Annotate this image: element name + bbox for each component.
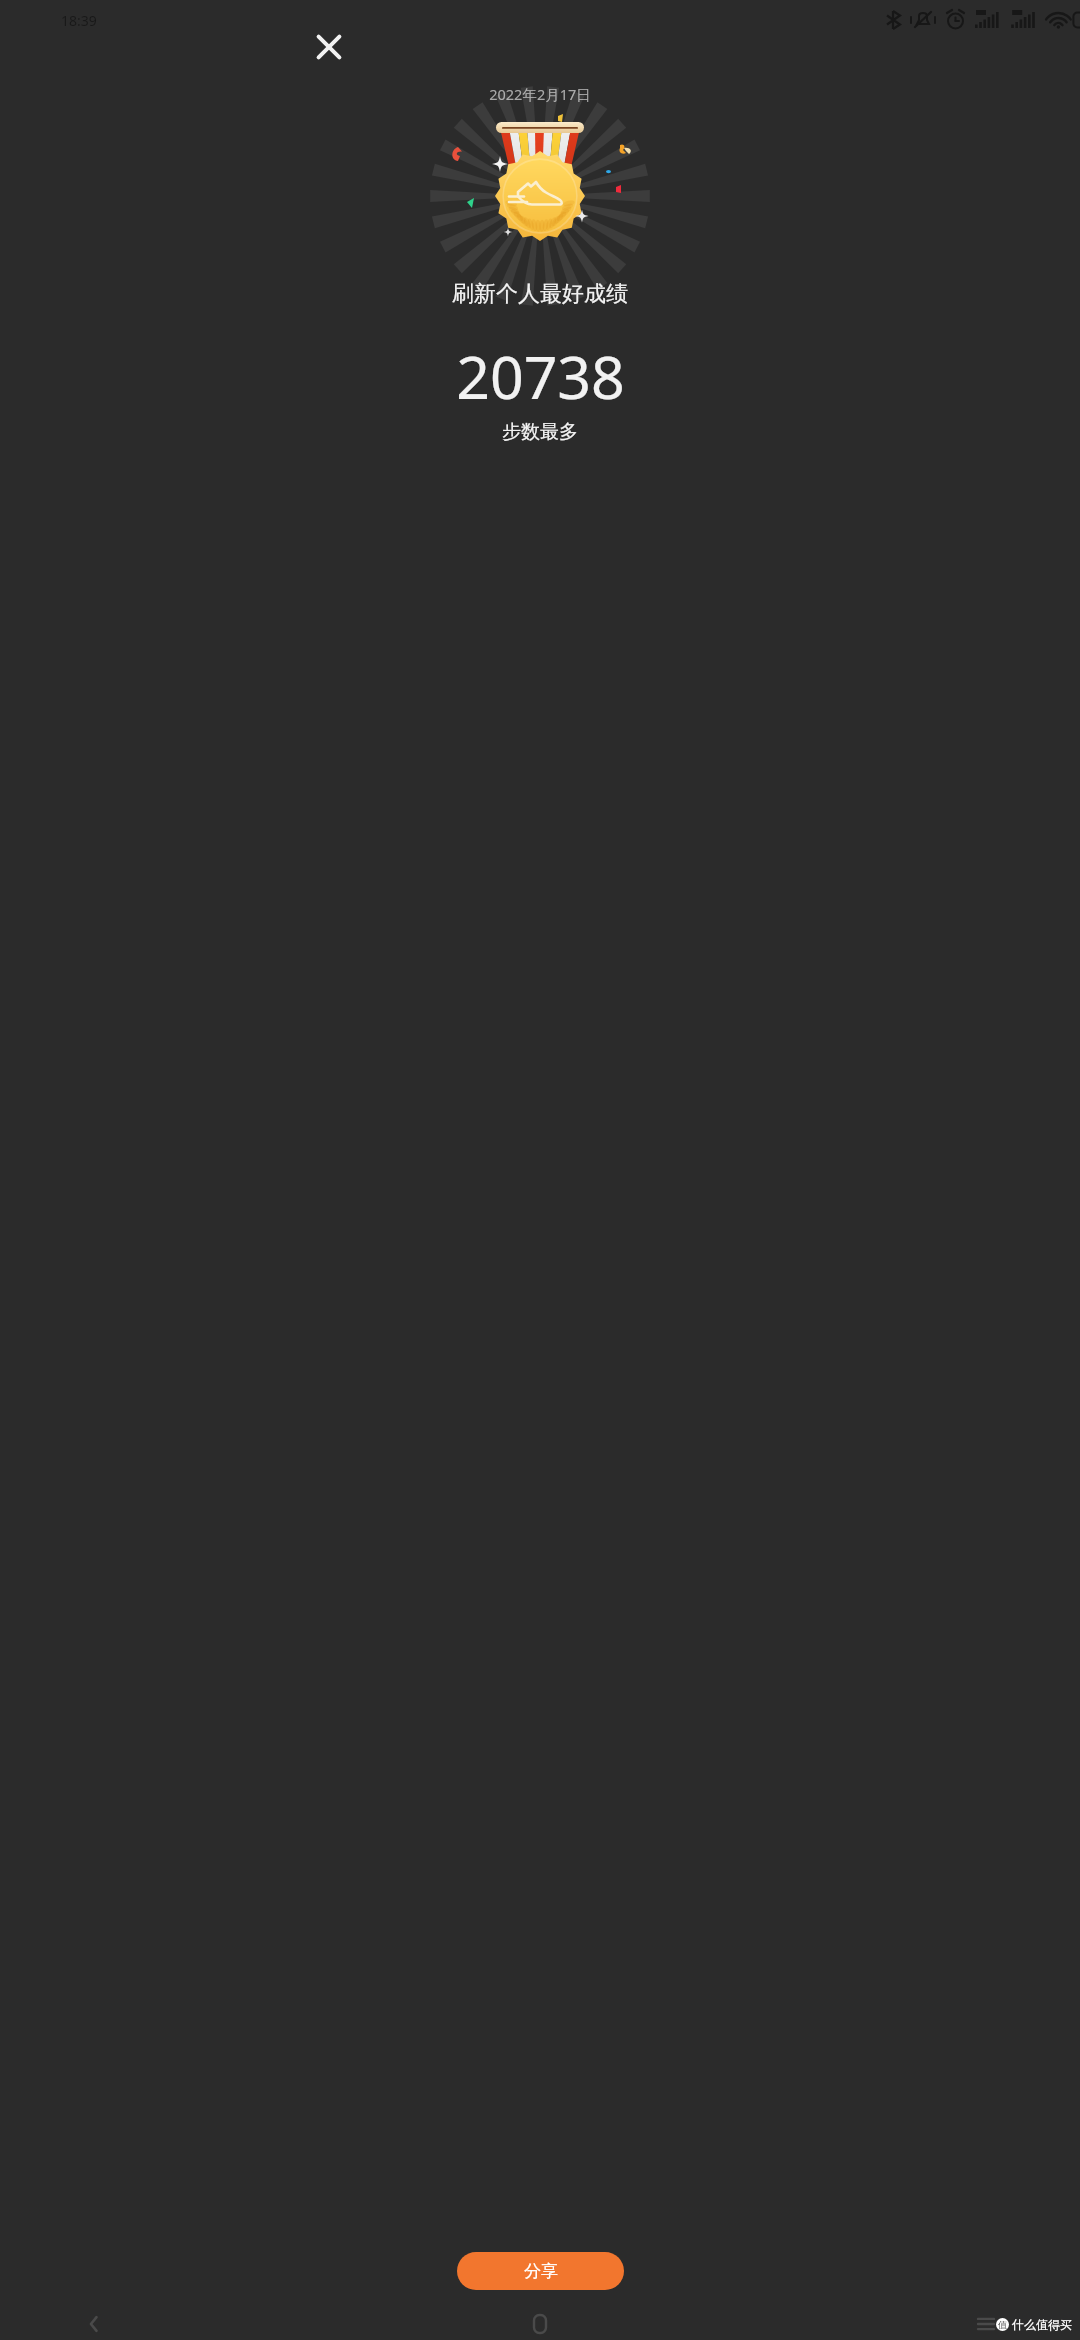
- button[interactable]: Close: [309, 27, 349, 67]
- button[interactable]: 分享: [457, 2252, 624, 2290]
- button[interactable]: Back: [76, 2308, 112, 2340]
- staticText: 2022年2月17日: [489, 84, 591, 104]
- staticText: 刷新个人最好成绩: [452, 280, 628, 308]
- staticText: 20738: [456, 336, 625, 416]
- staticText: 分享: [524, 2261, 558, 2282]
- staticText: 值: [998, 2319, 1007, 2330]
- button[interactable]: Recents: [968, 2308, 1004, 2340]
- button[interactable]: Home: [522, 2308, 558, 2340]
- staticText: 什么值得买: [1012, 2317, 1072, 2332]
- staticText: 步数最多: [502, 420, 578, 444]
- staticText: 18:39: [61, 11, 97, 30]
